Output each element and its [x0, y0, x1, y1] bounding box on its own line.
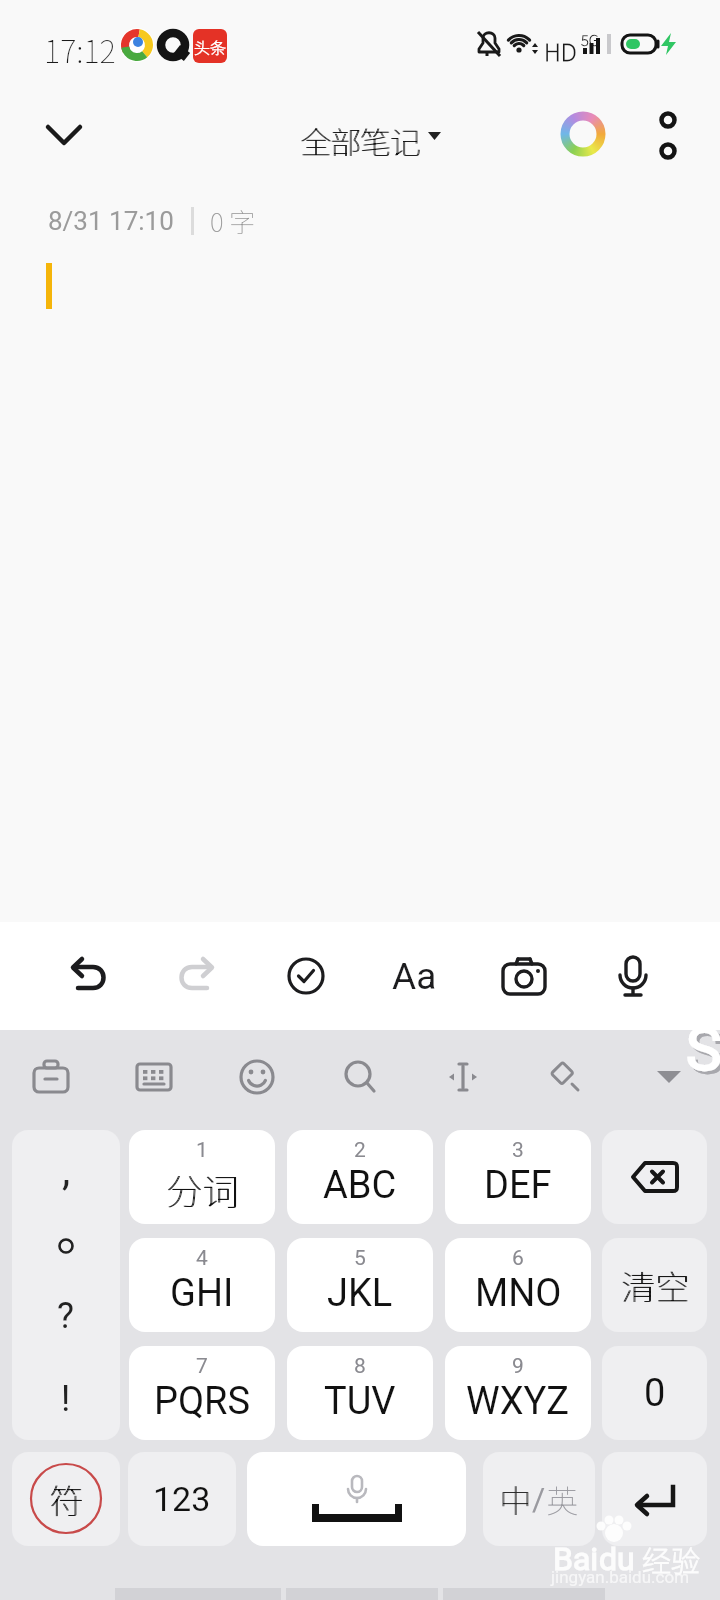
staticText: ,: [62, 1146, 71, 1195]
staticText: PQRS: [154, 1379, 251, 1424]
staticText: 123: [153, 1479, 211, 1519]
staticText: DEF: [484, 1163, 552, 1208]
staticText: MNO: [475, 1271, 562, 1316]
button[interactable]: 2: [287, 1130, 433, 1224]
button[interactable]: [205, 1030, 308, 1124]
staticText: 中: [499, 1476, 532, 1522]
button[interactable]: [0, 1030, 102, 1124]
staticText: 9: [512, 1354, 524, 1379]
staticText: 4: [196, 1246, 208, 1271]
button[interactable]: 123: [128, 1452, 236, 1546]
staticText: 1: [196, 1138, 208, 1163]
staticText: !: [61, 1378, 71, 1420]
button[interactable]: Aa: [360, 922, 469, 1030]
staticText: 清空: [622, 1261, 690, 1310]
button[interactable]: [640, 100, 696, 170]
staticText: 符: [49, 1475, 83, 1524]
button[interactable]: 0: [602, 1346, 707, 1440]
staticText: 经验: [642, 1538, 701, 1580]
button[interactable]: 4: [129, 1238, 275, 1332]
button[interactable]: [102, 1030, 205, 1124]
button[interactable]: [557, 108, 609, 160]
staticText: HD: [544, 33, 577, 68]
staticText: Aa: [392, 955, 437, 998]
staticText: GHI: [170, 1271, 234, 1316]
button[interactable]: 中: [483, 1452, 595, 1546]
staticText: 0 字: [210, 202, 256, 240]
staticText: 符: [50, 1475, 84, 1524]
staticText: JKL: [327, 1271, 393, 1316]
staticText: 7: [196, 1354, 208, 1379]
button[interactable]: 全部笔记: [300, 118, 420, 163]
staticText: 5: [354, 1246, 366, 1271]
button[interactable]: 9: [445, 1346, 591, 1440]
staticText: 分词: [167, 1163, 240, 1215]
button[interactable]: 3: [445, 1130, 591, 1224]
staticText: 17:12: [44, 27, 116, 72]
button[interactable]: [308, 1030, 411, 1124]
button[interactable]: 1: [129, 1130, 275, 1224]
button[interactable]: [617, 1030, 720, 1124]
button[interactable]: [602, 1452, 707, 1546]
staticText: 8/31 17:10: [48, 206, 174, 236]
button[interactable]: [514, 1030, 617, 1124]
button[interactable]: [602, 1130, 707, 1224]
staticText: 清空: [621, 1261, 689, 1310]
staticText: 全部笔记: [301, 118, 421, 163]
staticText: WXYZ: [466, 1379, 570, 1424]
staticText: 3: [512, 1138, 524, 1163]
staticText: /: [532, 1480, 546, 1518]
button[interactable]: [578, 922, 687, 1030]
staticText: du: [599, 1540, 635, 1578]
staticText: TUV: [324, 1379, 396, 1424]
staticText: ABC: [323, 1163, 397, 1208]
staticText: 头条: [194, 35, 227, 58]
staticText: ?: [57, 1295, 75, 1337]
button[interactable]: 6: [445, 1238, 591, 1332]
staticText: 5G: [581, 29, 599, 51]
button[interactable]: 清空: [602, 1238, 707, 1332]
button[interactable]: 8: [287, 1346, 433, 1440]
button[interactable]: 7: [129, 1346, 275, 1440]
staticText: 分词: [166, 1163, 239, 1215]
button[interactable]: [142, 922, 251, 1030]
staticText: S: [689, 1017, 720, 1087]
staticText: Bai: [553, 1540, 599, 1578]
button[interactable]: [469, 922, 578, 1030]
staticText: 全部笔记: [300, 118, 420, 163]
staticText: 6: [512, 1246, 524, 1271]
staticText: jingyan.baidu.com: [551, 1567, 690, 1587]
button[interactable]: [247, 1452, 466, 1546]
button[interactable]: [411, 1030, 514, 1124]
staticText: 2: [354, 1138, 366, 1163]
staticText: 8: [354, 1354, 366, 1379]
button[interactable]: [251, 922, 360, 1030]
staticText: S: [686, 1014, 720, 1084]
staticText: 英: [546, 1476, 579, 1522]
staticText: 中: [500, 1476, 533, 1522]
button[interactable]: 符: [12, 1452, 120, 1546]
staticText: 0: [644, 1371, 666, 1416]
button[interactable]: [32, 102, 98, 168]
button[interactable]: 5: [287, 1238, 433, 1332]
button[interactable]: [33, 922, 142, 1030]
button[interactable]: ,: [12, 1130, 120, 1440]
